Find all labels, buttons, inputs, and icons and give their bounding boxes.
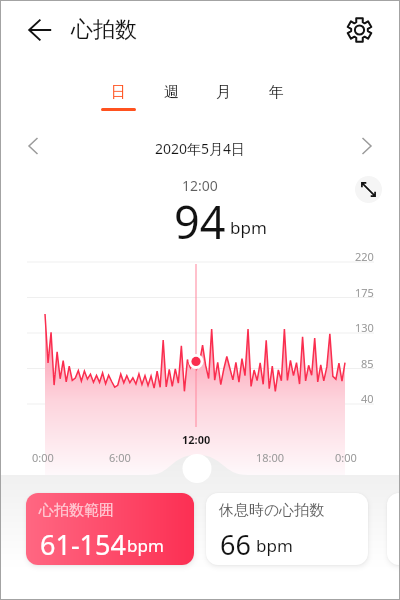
staticText: 94 — [174, 191, 226, 252]
button[interactable]: Back — [18, 14, 50, 46]
staticText: 18:00 — [256, 450, 285, 465]
button[interactable] — [387, 493, 400, 565]
staticText: bpm — [230, 216, 267, 239]
staticText: 12:00 — [182, 176, 218, 195]
staticText: 6:00 — [109, 450, 131, 465]
staticText: 40 — [361, 391, 374, 406]
button[interactable]: Previous day — [17, 130, 49, 162]
button[interactable]: 月 — [198, 78, 248, 106]
button[interactable]: 週 — [146, 78, 196, 106]
staticText: 12:00 — [182, 432, 211, 447]
staticText: 月 — [216, 83, 231, 102]
button[interactable]: 日 — [93, 78, 143, 106]
button[interactable]: Next day — [351, 130, 383, 162]
staticText: 66 — [220, 526, 251, 563]
staticText: bpm — [256, 534, 293, 557]
button[interactable]: Settings — [344, 14, 376, 46]
staticText: 2020年5月4日 — [155, 139, 246, 158]
staticText: 心拍数 — [71, 16, 137, 44]
button[interactable]: 心拍数範囲 — [26, 493, 194, 565]
staticText: 休息時の心拍数 — [219, 501, 325, 520]
button[interactable]: 休息時の心拍数 — [206, 493, 368, 565]
staticText: 日 — [111, 83, 126, 102]
staticText: 年 — [269, 83, 284, 102]
staticText: 0:00 — [32, 450, 54, 465]
staticText: bpm — [127, 534, 164, 557]
staticText: 175 — [355, 285, 374, 300]
staticText: 0:00 — [335, 450, 357, 465]
staticText: 85 — [361, 356, 374, 371]
button[interactable]: 年 — [251, 78, 301, 106]
staticText: 週 — [164, 83, 179, 102]
button[interactable]: Expand chart — [355, 176, 382, 203]
staticText: 心拍数範囲 — [39, 501, 114, 520]
staticText: 61-154 — [40, 526, 126, 563]
staticText: 130 — [355, 320, 374, 335]
staticText: 220 — [355, 249, 374, 264]
